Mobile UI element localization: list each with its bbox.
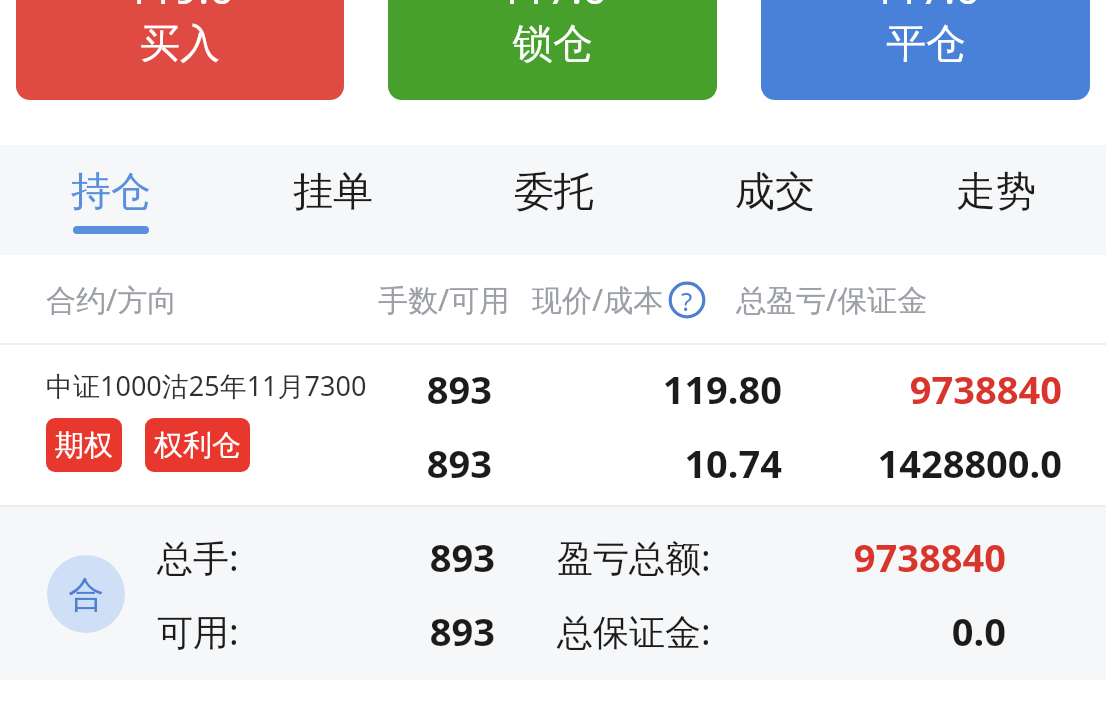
button[interactable]: 权利仓: [145, 418, 250, 472]
staticText: 9738840: [749, 531, 1006, 583]
staticText: 893: [277, 531, 495, 583]
staticText: 平仓: [886, 18, 966, 68]
staticText: 中证1000沽25年11月7300: [46, 367, 367, 404]
staticText: 9738840: [782, 363, 1062, 415]
staticText: 合: [68, 572, 104, 617]
staticText: 总手:: [157, 533, 277, 582]
staticText: ?: [681, 283, 693, 318]
button[interactable]: 持仓: [0, 145, 222, 255]
staticText: 走势: [956, 166, 1036, 216]
staticText: 现价/成本: [532, 279, 664, 320]
staticText: 117.6: [499, 0, 607, 16]
staticText: 买入: [140, 18, 220, 68]
staticText: 持仓: [71, 166, 151, 216]
button[interactable]: 合计: [47, 555, 125, 633]
button[interactable]: 走势: [885, 145, 1106, 255]
staticText: 0.0: [749, 605, 1006, 657]
staticText: 成交: [735, 166, 815, 216]
staticText: 期权: [55, 427, 113, 464]
staticText: 893: [300, 437, 492, 489]
staticText: 总保证金:: [557, 607, 749, 656]
staticText: 893: [277, 605, 495, 657]
button[interactable]: 委托: [443, 145, 664, 255]
staticText: 10.74: [492, 437, 782, 489]
button[interactable]: 117.6: [388, 0, 717, 100]
staticText: 119.80: [492, 363, 782, 415]
button[interactable]: 成交: [664, 145, 885, 255]
staticText: 手数/可用: [378, 279, 510, 320]
staticText: 可用:: [157, 607, 277, 656]
staticText: 合约/方向: [46, 279, 178, 320]
staticText: 893: [300, 363, 492, 415]
button[interactable]: 期权: [46, 418, 122, 472]
button[interactable]: 说明: [668, 281, 706, 319]
staticText: 117.6: [872, 0, 980, 16]
button[interactable]: 117.6: [761, 0, 1090, 100]
button[interactable]: 挂单: [222, 145, 443, 255]
staticText: 盈亏总额:: [557, 533, 749, 582]
staticText: 委托: [514, 166, 594, 216]
staticText: 挂单: [293, 166, 373, 216]
staticText: 119.6: [126, 0, 234, 16]
staticText: 总盈亏/保证金: [736, 279, 928, 320]
staticText: 1428800.0: [782, 437, 1062, 489]
button[interactable]: 119.6: [16, 0, 344, 100]
staticText: 锁仓: [513, 18, 593, 68]
staticText: 权利仓: [154, 427, 241, 464]
